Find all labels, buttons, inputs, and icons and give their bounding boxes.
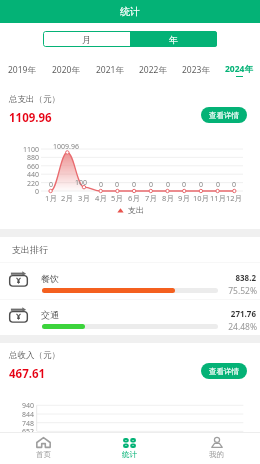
staticText: 440 (15, 170, 39, 180)
button[interactable]: 2021年 (88, 60, 131, 80)
staticText: 餐饮 (41, 273, 59, 284)
staticText: 0 (208, 180, 228, 190)
staticText: 748 (12, 419, 34, 429)
staticText: 2023年 (182, 64, 210, 76)
staticText: 9月 (174, 193, 194, 203)
staticText: 支出排行 (12, 244, 48, 255)
staticText: 1109.96 (9, 110, 52, 126)
staticText: 2022年 (139, 64, 167, 76)
staticText: 支出 (128, 205, 144, 215)
staticText: 940 (12, 401, 34, 411)
staticText: 1009.96 (46, 142, 86, 152)
staticText: 0 (91, 180, 111, 190)
button[interactable]: 2022年 (131, 60, 174, 80)
staticText: 838.2 (196, 272, 256, 283)
staticText: 0 (41, 180, 61, 190)
staticText: 2024年 (225, 63, 253, 75)
staticText: 月 (82, 34, 91, 45)
staticText: 1100 (15, 145, 39, 155)
button[interactable]: 2024年 (217, 60, 260, 80)
staticText: 首页 (36, 450, 51, 459)
button[interactable]: 2019年 (0, 60, 44, 80)
staticText: 总支出（元） (9, 94, 60, 105)
staticText: 查看详情 (209, 367, 239, 376)
button[interactable]: 月 (43, 31, 130, 47)
staticText: 0 (158, 180, 178, 190)
staticText: 4月 (91, 193, 111, 203)
staticText: 统计 (120, 5, 140, 18)
button[interactable]: 交通 (0, 304, 260, 340)
staticText: 660 (15, 162, 39, 172)
button[interactable]: 2020年 (44, 60, 88, 80)
staticText: 2月 (57, 193, 77, 203)
staticText: 0 (224, 180, 244, 190)
staticText: 2021年 (96, 64, 124, 76)
staticText: 271.76 (196, 308, 256, 319)
staticText: 11月 (208, 193, 228, 203)
staticText: 1月 (41, 193, 61, 203)
staticText: 880 (15, 153, 39, 163)
staticText: 75.52% (196, 285, 257, 297)
staticText: 652 (12, 427, 34, 437)
staticText: 467.61 (9, 366, 46, 382)
staticText: 8月 (158, 193, 178, 203)
staticText: 6月 (124, 193, 144, 203)
staticText: 查看详情 (209, 111, 239, 120)
button[interactable]: 餐饮 (0, 268, 260, 304)
other: Profile (211, 437, 223, 448)
button[interactable]: 2023年 (174, 60, 217, 80)
staticText: 2020年 (52, 64, 80, 76)
staticText: 年 (169, 34, 178, 45)
staticText: 10月 (191, 193, 211, 203)
staticText: 0 (15, 187, 39, 197)
button[interactable]: 统计 (86, 432, 173, 464)
staticText: 24.48% (196, 321, 257, 333)
button[interactable]: Home (0, 432, 86, 464)
staticText: 3月 (74, 193, 94, 203)
staticText: 交通 (41, 309, 59, 320)
staticText: 总收入（元） (9, 350, 60, 361)
staticText: 0 (174, 180, 194, 190)
staticText: 我的 (209, 450, 224, 459)
staticText: 0 (124, 180, 144, 190)
staticText: 统计 (122, 450, 137, 459)
other: Home (36, 437, 51, 448)
staticText: 2019年 (8, 64, 36, 76)
staticText: 0 (141, 180, 161, 190)
button[interactable]: Profile (173, 432, 260, 464)
button[interactable]: 查看详情 (201, 363, 247, 379)
staticText: 7月 (141, 193, 161, 203)
staticText: 844 (12, 410, 34, 420)
staticText: 0 (107, 180, 127, 190)
staticText: 12月 (224, 193, 244, 203)
staticText: 100 (71, 178, 91, 188)
staticText: 5月 (107, 193, 127, 203)
staticText: 0 (191, 180, 211, 190)
button[interactable]: 查看详情 (201, 107, 247, 123)
button[interactable]: 年 (130, 31, 217, 47)
staticText: 220 (15, 179, 39, 189)
